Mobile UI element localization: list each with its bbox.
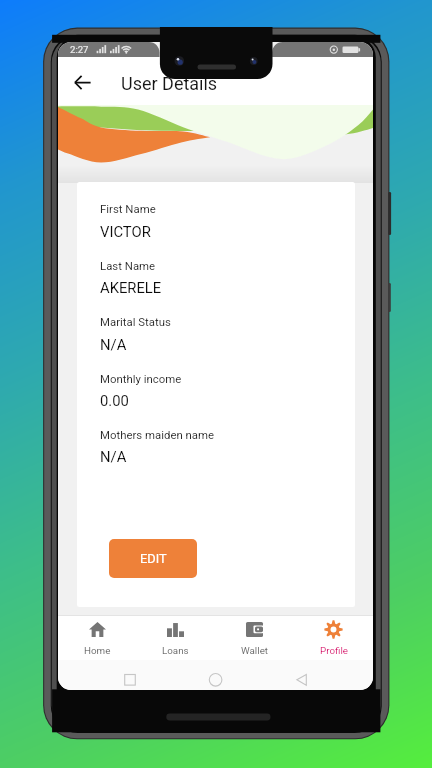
staticText: EDIT	[140, 551, 167, 566]
button[interactable]: EDIT	[109, 539, 197, 578]
staticText: Marital Status	[100, 315, 171, 328]
staticText: AKERELE	[100, 279, 162, 296]
staticText: VICTOR	[100, 223, 151, 240]
staticText: 0.00	[100, 392, 129, 409]
button[interactable]: Profile	[294, 616, 373, 660]
button[interactable]: Home	[58, 616, 136, 660]
staticText: Profile	[320, 645, 348, 656]
staticText: N/A	[100, 336, 127, 353]
button[interactable]: Loans	[136, 616, 215, 660]
staticText: Monthly income	[100, 372, 182, 385]
staticText: Loans	[162, 645, 189, 656]
staticText: User Details	[121, 73, 218, 94]
staticText: N/A	[100, 448, 127, 465]
staticText: Last Name	[100, 259, 156, 272]
button[interactable]: Wallet	[215, 616, 294, 660]
staticText: First Name	[100, 202, 156, 215]
staticText: Home	[84, 645, 111, 656]
staticText: Mothers maiden name	[100, 428, 215, 441]
staticText: 2:27	[70, 44, 89, 55]
button[interactable]: Back	[67, 67, 98, 98]
staticText: Wallet	[241, 645, 269, 656]
